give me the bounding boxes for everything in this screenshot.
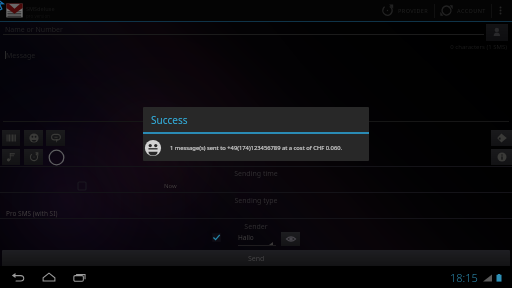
staticText: Sending time (0, 169, 512, 179)
staticText: Success (151, 113, 188, 127)
button[interactable]: Attach (2, 149, 20, 165)
button[interactable]: Preview (281, 232, 300, 246)
staticText: Hallo (238, 233, 254, 242)
staticText: 18:15 (450, 270, 478, 285)
button[interactable]: Emoticons (24, 130, 43, 146)
staticText: Name or Number (5, 25, 63, 35)
staticText: 0 characters (1 SMS) (0, 43, 507, 51)
staticText: ACCOUNT (457, 7, 486, 14)
staticText: Pro SMS (with SI) (6, 209, 58, 218)
button[interactable]: More options (492, 0, 508, 21)
button[interactable]: Hallo (238, 233, 276, 246)
button[interactable]: Info (491, 149, 512, 165)
button[interactable]: App icon (6, 3, 23, 18)
staticText: PROVIDER (398, 7, 429, 14)
button[interactable]: Home (33, 266, 64, 288)
button[interactable]: Progress (47, 148, 65, 166)
button[interactable]: Schedule (76, 180, 87, 191)
staticText: Now (164, 182, 177, 190)
staticText: Message (6, 51, 36, 61)
staticText: Sending type (0, 196, 512, 206)
button[interactable]: Use sender (211, 232, 222, 243)
button[interactable]: Reload (24, 149, 43, 165)
button[interactable]: Back (2, 266, 33, 288)
staticText: Send (248, 254, 265, 264)
button[interactable]: Tags (491, 130, 512, 146)
button[interactable]: Text format (2, 130, 20, 146)
button[interactable]: Send (2, 250, 510, 268)
staticText: 1 message(s) sent to +49(174)123456789 a… (170, 144, 343, 152)
button[interactable]: PROVIDER (376, 0, 434, 21)
button[interactable]: Recents (64, 266, 95, 288)
button[interactable]: Templates (46, 130, 65, 146)
staticText: SMSdeluxe (26, 5, 55, 12)
staticText: Sender (0, 222, 512, 232)
button[interactable]: Pick contact (486, 24, 508, 41)
button[interactable]: ACCOUNT (435, 0, 491, 21)
